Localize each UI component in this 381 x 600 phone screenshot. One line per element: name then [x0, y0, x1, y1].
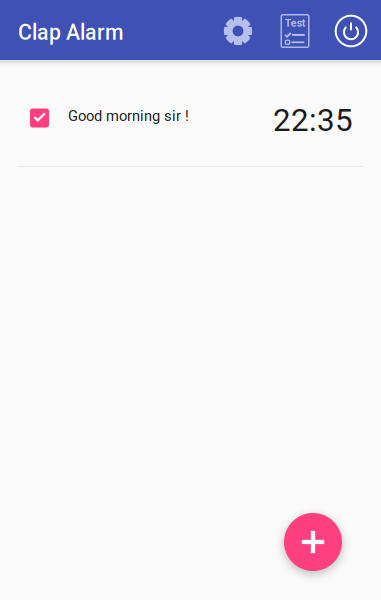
staticText: Clap Alarm — [18, 20, 124, 45]
button[interactable]: Power — [327, 7, 375, 55]
button[interactable]: Settings — [214, 7, 262, 55]
staticText: Good morning sir ! — [68, 107, 189, 125]
staticText: Test — [285, 17, 306, 29]
button[interactable]: Test alarm — [271, 7, 319, 55]
button[interactable]: Add alarm — [284, 513, 342, 571]
button[interactable]: Good morning sir ! — [0, 60, 381, 167]
staticText: 22:35 — [273, 102, 353, 139]
